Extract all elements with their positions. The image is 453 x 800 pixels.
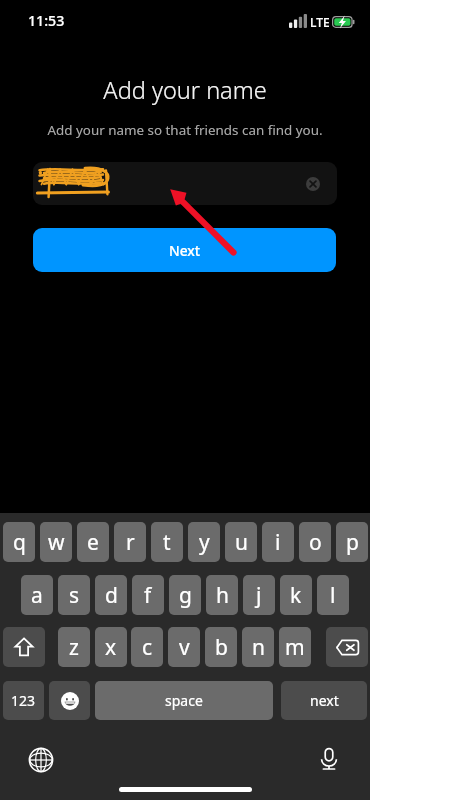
button[interactable]: Backspace	[326, 627, 368, 667]
staticText: p	[346, 528, 359, 557]
button[interactable]: Change keyboard	[28, 747, 54, 773]
staticText: a	[31, 581, 43, 610]
staticText: LTE	[310, 14, 330, 30]
button[interactable]: g	[169, 575, 201, 615]
staticText: b	[215, 633, 228, 662]
button[interactable]: f	[132, 575, 164, 615]
button[interactable]: j	[243, 575, 275, 615]
button[interactable]: 123	[3, 681, 44, 720]
button[interactable]: h	[206, 575, 238, 615]
staticText: f	[144, 581, 152, 610]
staticText: t	[163, 528, 171, 557]
button[interactable]: t	[151, 522, 183, 562]
button[interactable]: y	[188, 522, 220, 562]
button[interactable]: Next	[33, 228, 336, 272]
staticText: u	[235, 528, 248, 557]
button[interactable]: a	[21, 575, 53, 615]
staticText: l	[330, 581, 336, 610]
staticText: d	[105, 581, 118, 610]
button[interactable]: e	[77, 522, 109, 562]
staticText: i	[275, 528, 281, 557]
button[interactable]: s	[58, 575, 90, 615]
staticText: s	[69, 581, 80, 610]
staticText: v	[179, 633, 190, 662]
button[interactable]: v	[168, 627, 200, 667]
staticText: q	[13, 528, 26, 557]
button[interactable]: Clear text	[306, 177, 320, 191]
button[interactable]: w	[40, 522, 72, 562]
staticText: r	[126, 528, 135, 557]
button[interactable]: Dictate	[316, 746, 342, 772]
staticText: Add your name	[0, 74, 370, 106]
button[interactable]: i	[262, 522, 294, 562]
staticText: k	[290, 581, 302, 610]
staticText: y	[199, 528, 210, 557]
staticText: e	[87, 528, 99, 557]
button[interactable]: z	[58, 627, 90, 667]
button[interactable]: next	[281, 681, 367, 720]
button[interactable]: p	[336, 522, 368, 562]
button[interactable]: b	[205, 627, 237, 667]
staticText: z	[69, 633, 79, 662]
staticText: space	[165, 691, 203, 710]
staticText: next	[310, 691, 339, 710]
button[interactable]: Shift	[3, 627, 45, 667]
button[interactable]: q	[3, 522, 35, 562]
button[interactable]: c	[131, 627, 163, 667]
button[interactable]: x	[95, 627, 127, 667]
staticText: c	[142, 633, 153, 662]
staticText: 11:53	[28, 11, 65, 30]
button[interactable]: Emoji	[49, 681, 90, 720]
button[interactable]: o	[299, 522, 331, 562]
button[interactable]: d	[95, 575, 127, 615]
button[interactable]: space	[95, 681, 273, 720]
button[interactable]: u	[225, 522, 257, 562]
staticText: j	[256, 581, 262, 610]
button[interactable]: r	[114, 522, 146, 562]
button[interactable]: k	[280, 575, 312, 615]
staticText: 123	[11, 691, 36, 710]
staticText: x	[105, 633, 117, 662]
staticText: m	[285, 633, 305, 662]
button[interactable]: n	[242, 627, 274, 667]
staticText: w	[48, 528, 65, 557]
staticText: h	[216, 581, 229, 610]
staticText: o	[309, 528, 322, 557]
button[interactable]: m	[279, 627, 311, 667]
staticText: Add your name so that friends can find y…	[0, 121, 370, 139]
button[interactable]: Clear text	[33, 162, 337, 205]
button[interactable]: l	[317, 575, 349, 615]
staticText: Next	[169, 241, 201, 260]
staticText: g	[179, 581, 192, 610]
staticText: n	[252, 633, 265, 662]
